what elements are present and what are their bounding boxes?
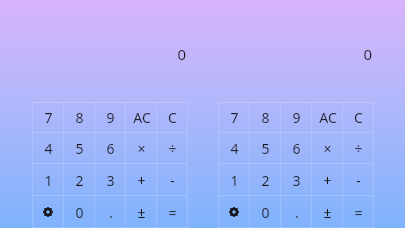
staticText: 4 (44, 139, 53, 158)
staticText: - (356, 171, 361, 190)
staticText: 3 (106, 171, 115, 190)
button[interactable]: 7 (218, 102, 250, 133)
staticText: ± (323, 203, 332, 222)
button[interactable]: . (95, 196, 126, 228)
button[interactable]: . (281, 196, 312, 228)
button[interactable]: 6 (95, 133, 126, 164)
button[interactable]: 4 (32, 133, 64, 164)
button[interactable]: Settings (32, 196, 64, 228)
button[interactable]: × (126, 133, 157, 164)
button[interactable]: 0 (156, 44, 186, 64)
staticText: ÷ (354, 139, 363, 158)
staticText: 3 (292, 171, 301, 190)
staticText: 7 (230, 108, 239, 127)
staticText: 6 (106, 139, 115, 158)
staticText: ÷ (168, 139, 177, 158)
button[interactable]: × (312, 133, 343, 164)
staticText: 7 (44, 108, 53, 127)
staticText: - (170, 171, 175, 190)
staticText: = (168, 203, 177, 222)
button[interactable]: 7 (32, 102, 64, 133)
staticText: C (168, 108, 177, 127)
button[interactable]: - (157, 164, 188, 196)
button[interactable]: Settings (218, 196, 250, 228)
button[interactable]: 2 (250, 164, 281, 196)
button[interactable]: - (343, 164, 374, 196)
button[interactable]: 1 (218, 164, 250, 196)
button[interactable]: 1 (32, 164, 64, 196)
button[interactable]: C (157, 102, 188, 133)
staticText: 9 (106, 108, 115, 127)
button[interactable]: 3 (281, 164, 312, 196)
staticText: 0 (75, 203, 84, 222)
staticText: 8 (75, 108, 84, 127)
button[interactable]: 2 (64, 164, 95, 196)
button[interactable]: 9 (95, 102, 126, 133)
button[interactable]: 8 (64, 102, 95, 133)
staticText: 6 (292, 139, 301, 158)
staticText: = (354, 203, 363, 222)
staticText: 9 (292, 108, 301, 127)
button[interactable]: AC (312, 102, 343, 133)
button[interactable]: ÷ (343, 133, 374, 164)
staticText: × (137, 139, 146, 158)
staticText: + (323, 171, 332, 190)
staticText: 5 (75, 139, 84, 158)
staticText: 0 (261, 203, 270, 222)
button[interactable]: ± (126, 196, 157, 228)
button[interactable]: 5 (64, 133, 95, 164)
staticText: AC (133, 108, 151, 127)
button[interactable]: ÷ (157, 133, 188, 164)
button[interactable]: C (343, 102, 374, 133)
staticText: . (295, 203, 299, 222)
staticText: 2 (261, 171, 270, 190)
staticText: C (354, 108, 363, 127)
button[interactable]: = (343, 196, 374, 228)
button[interactable]: 0 (64, 196, 95, 228)
button[interactable]: 3 (95, 164, 126, 196)
button[interactable]: 8 (250, 102, 281, 133)
staticText: AC (319, 108, 337, 127)
button[interactable]: 4 (218, 133, 250, 164)
button[interactable]: = (157, 196, 188, 228)
staticText: 1 (44, 171, 53, 190)
button[interactable]: + (312, 164, 343, 196)
staticText: 8 (261, 108, 270, 127)
staticText: × (323, 139, 332, 158)
staticText: 5 (261, 139, 270, 158)
button[interactable]: 9 (281, 102, 312, 133)
button[interactable]: 0 (250, 196, 281, 228)
button[interactable]: + (126, 164, 157, 196)
staticText: + (137, 171, 146, 190)
button[interactable]: 6 (281, 133, 312, 164)
button[interactable]: 0 (342, 44, 372, 64)
button[interactable]: ± (312, 196, 343, 228)
staticText: ± (137, 203, 146, 222)
staticText: . (109, 203, 113, 222)
button[interactable]: 5 (250, 133, 281, 164)
staticText: 2 (75, 171, 84, 190)
staticText: 4 (230, 139, 239, 158)
staticText: 1 (230, 171, 239, 190)
button[interactable]: AC (126, 102, 157, 133)
